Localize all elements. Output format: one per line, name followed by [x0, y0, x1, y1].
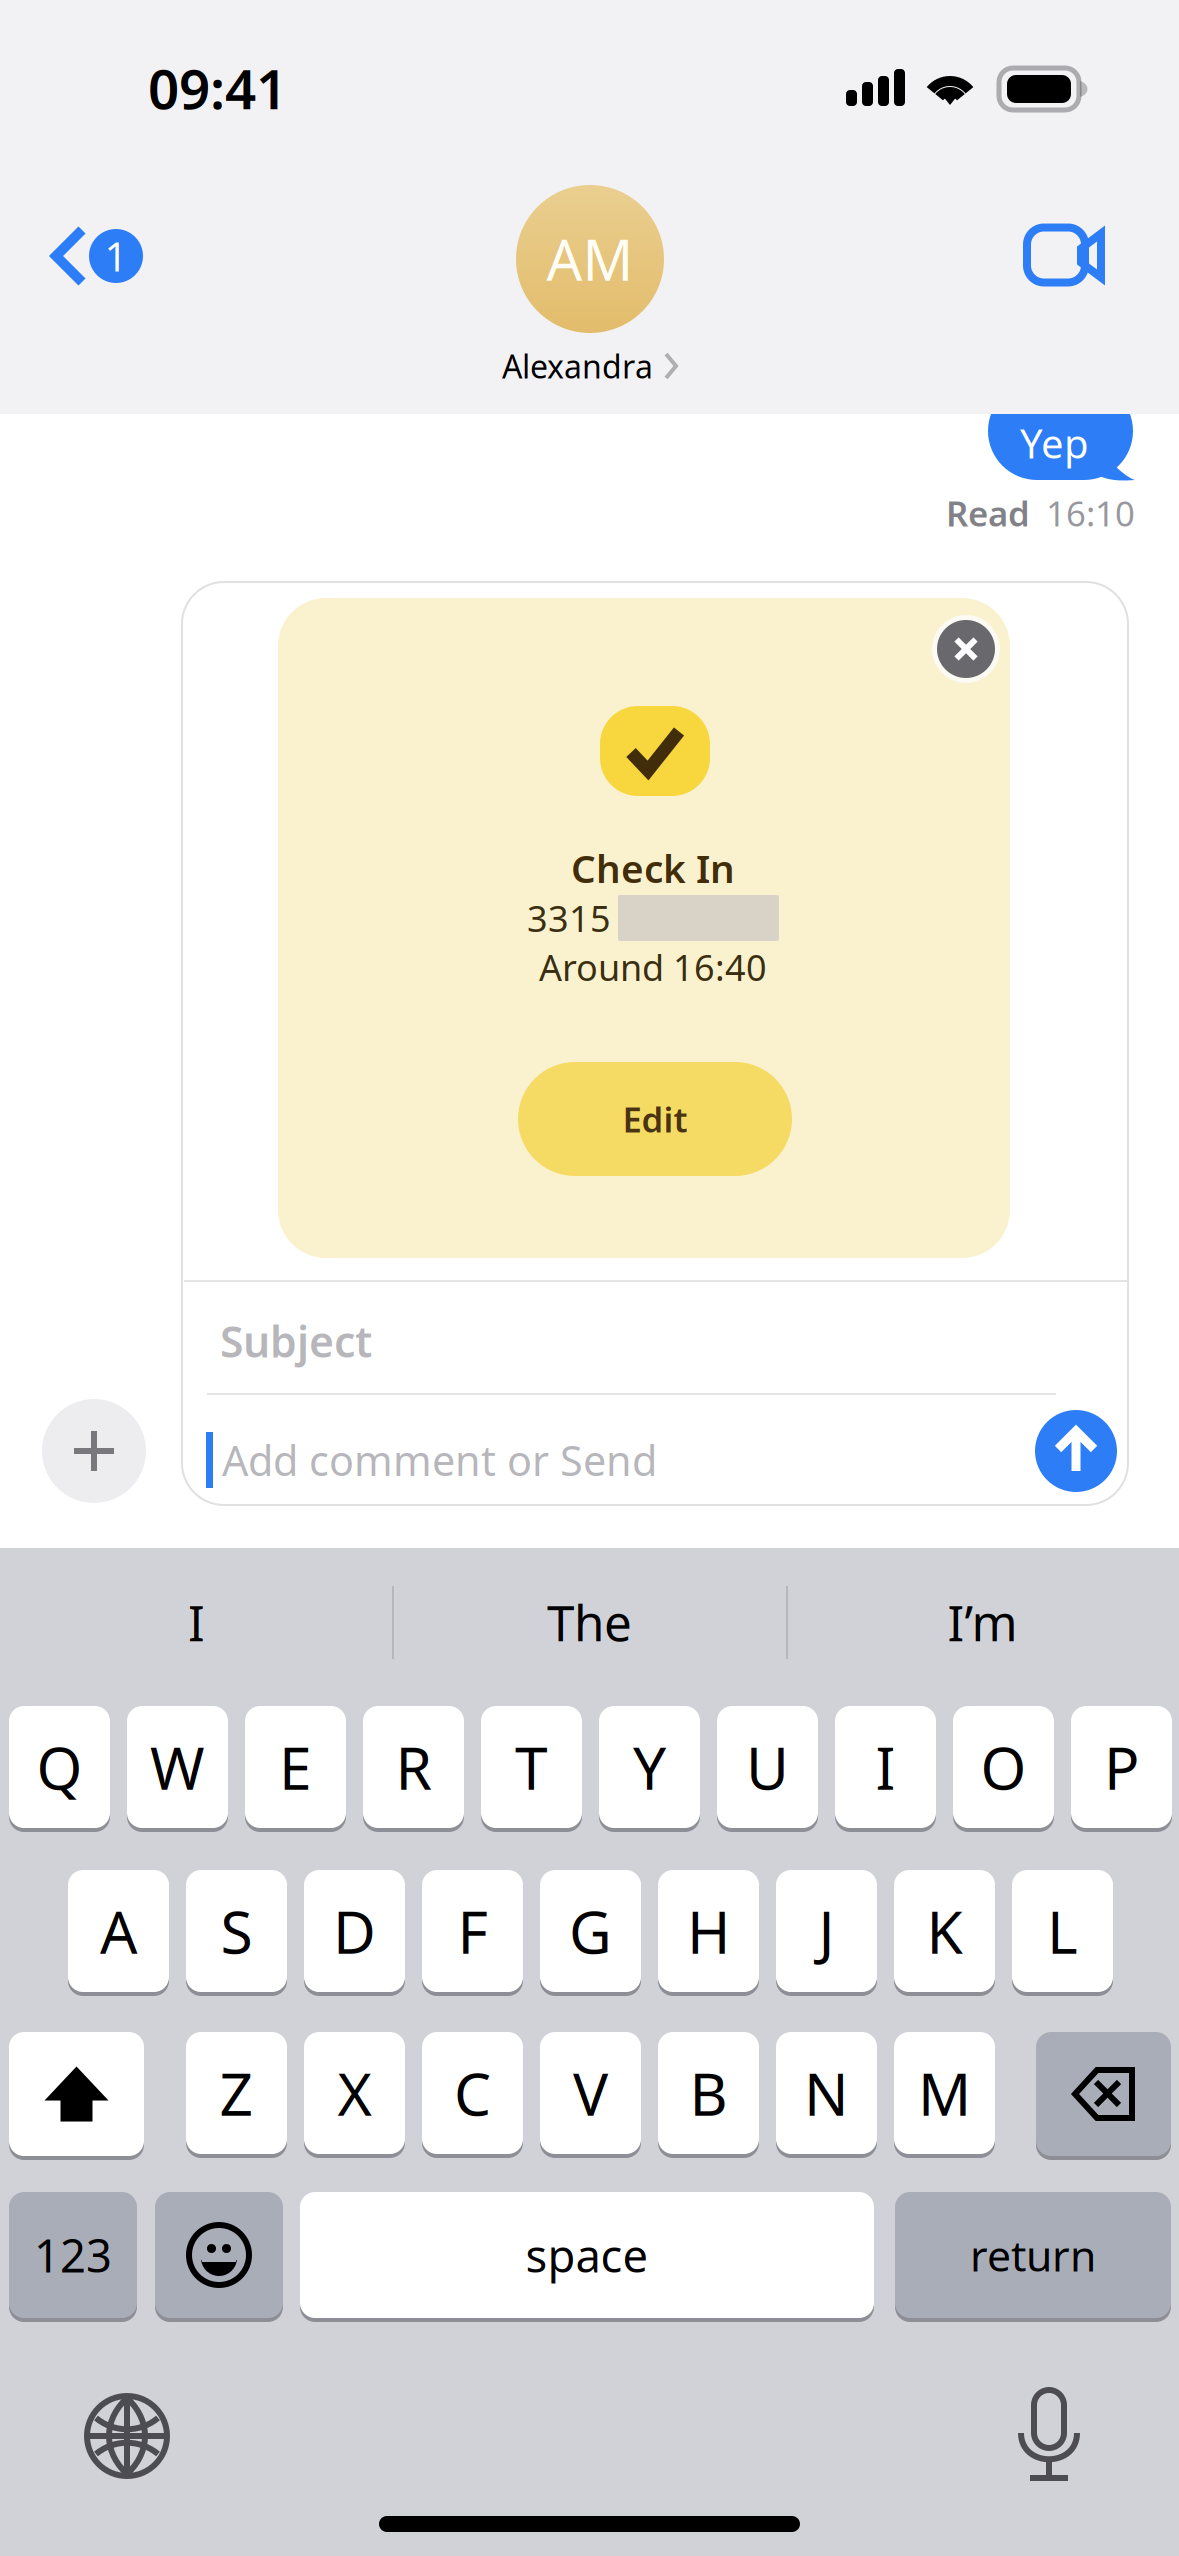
button[interactable]: Shift	[9, 2032, 144, 2161]
button[interactable]: N	[776, 2032, 877, 2159]
staticText: I	[188, 1589, 205, 1655]
button[interactable]: I’m	[786, 1566, 1179, 1678]
button[interactable]: Dictation	[1021, 2390, 1077, 2482]
button[interactable]: Y	[599, 1706, 700, 1833]
button[interactable]: S	[186, 1870, 287, 1997]
staticText: Check In	[571, 842, 735, 894]
staticText: W	[150, 1728, 205, 1806]
button[interactable]: 123	[9, 2192, 137, 2323]
staticText: S	[220, 1892, 252, 1970]
staticText: 09:41	[148, 52, 287, 124]
button[interactable]: Q	[9, 1706, 110, 1833]
button[interactable]: H	[658, 1870, 759, 1997]
staticText: M	[918, 2054, 971, 2132]
button[interactable]: X	[304, 2032, 405, 2159]
button[interactable]: P	[1071, 1706, 1172, 1833]
button[interactable]: I	[835, 1706, 936, 1833]
staticText: N	[804, 2054, 849, 2132]
staticText: E	[279, 1728, 312, 1806]
button[interactable]: space	[300, 2192, 874, 2323]
button[interactable]: T	[481, 1706, 582, 1833]
button[interactable]: A	[68, 1870, 169, 1997]
button[interactable]: Z	[186, 2032, 287, 2159]
button[interactable]: Add comment or Send	[182, 1406, 1022, 1516]
staticText: Add comment or Send	[222, 1433, 657, 1487]
button[interactable]: D	[304, 1870, 405, 1997]
staticText: H	[687, 1892, 730, 1970]
button[interactable]: L	[1012, 1870, 1113, 1997]
button[interactable]: M	[894, 2032, 995, 2159]
staticText: Read	[946, 490, 1030, 536]
staticText: T	[515, 1728, 548, 1806]
button[interactable]: C	[422, 2032, 523, 2159]
staticText: Z	[219, 2054, 253, 2132]
button[interactable]: Change keyboard	[87, 2396, 167, 2476]
staticText: The	[547, 1589, 632, 1655]
staticText: I’m	[947, 1589, 1017, 1655]
button[interactable]: J	[776, 1870, 877, 1997]
button[interactable]: The	[393, 1566, 786, 1678]
staticText: P	[1104, 1728, 1139, 1806]
button[interactable]: FaceTime	[1000, 196, 1140, 316]
button[interactable]: V	[540, 2032, 641, 2159]
staticText: X	[337, 2054, 371, 2132]
button[interactable]: Emoji	[155, 2192, 283, 2323]
staticText: A	[100, 1892, 137, 1970]
button[interactable]: Add attachment	[42, 1399, 146, 1503]
staticText: return	[970, 2227, 1096, 2283]
staticText: L	[1047, 1892, 1078, 1970]
button[interactable]: AM	[430, 180, 750, 395]
staticText: AM	[546, 222, 633, 296]
staticText: F	[457, 1892, 487, 1970]
staticText: G	[569, 1892, 612, 1970]
staticText: U	[746, 1728, 789, 1806]
staticText: I	[875, 1728, 895, 1806]
button[interactable]: B	[658, 2032, 759, 2159]
staticText: C	[454, 2054, 491, 2132]
staticText: Y	[633, 1728, 666, 1806]
staticText: Subject	[220, 1313, 372, 1369]
staticText: Q	[36, 1728, 82, 1806]
staticText: space	[525, 2225, 648, 2285]
button[interactable]: Remove Check In	[932, 615, 1000, 683]
staticText: Alexandra	[502, 345, 653, 387]
staticText: Yep	[1020, 416, 1089, 469]
button[interactable]: return	[895, 2192, 1171, 2323]
staticText: D	[333, 1892, 376, 1970]
button[interactable]: O	[953, 1706, 1054, 1833]
staticText: 1	[104, 229, 127, 282]
staticText: 123	[34, 2225, 112, 2285]
staticText: O	[980, 1728, 1026, 1806]
button[interactable]: Subject	[182, 1282, 1128, 1400]
button[interactable]: F	[422, 1870, 523, 1997]
button[interactable]: R	[363, 1706, 464, 1833]
button[interactable]: K	[894, 1870, 995, 1997]
button[interactable]: U	[717, 1706, 818, 1833]
staticText: Edit	[622, 1096, 687, 1142]
staticText: J	[818, 1892, 834, 1970]
staticText: R	[395, 1728, 431, 1806]
button[interactable]: Edit	[518, 1062, 792, 1176]
button[interactable]: Send	[1035, 1410, 1117, 1492]
button[interactable]: I	[0, 1566, 393, 1678]
staticText: 16:10	[1046, 490, 1135, 536]
button[interactable]: Back	[20, 196, 190, 316]
button[interactable]: G	[540, 1870, 641, 1997]
staticText: V	[573, 2054, 608, 2132]
staticText: Around 16:40	[539, 943, 767, 991]
button[interactable]: W	[127, 1706, 228, 1833]
button[interactable]: Delete	[1036, 2032, 1171, 2161]
staticText: B	[689, 2054, 727, 2132]
staticText: 3315	[527, 894, 611, 942]
button[interactable]: E	[245, 1706, 346, 1833]
staticText: K	[926, 1892, 962, 1970]
